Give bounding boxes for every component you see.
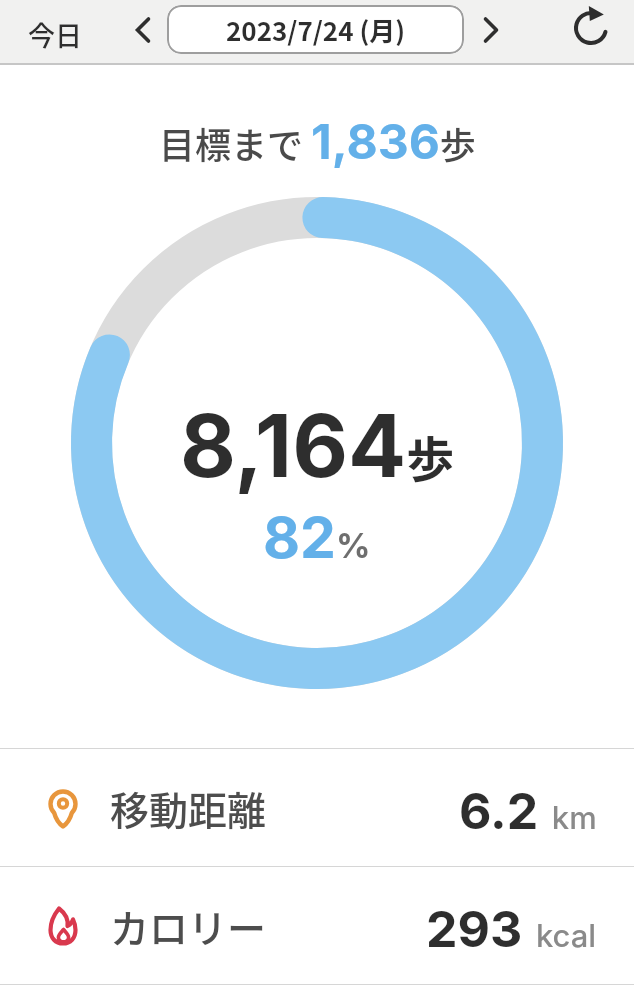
staticText: 目標まで 1,836歩 [159, 112, 476, 170]
staticText: 移動距離 [110, 780, 267, 836]
button[interactable]: 移動距離 [0, 749, 634, 866]
staticText: 6.2 km [459, 781, 597, 841]
button[interactable]: 2023/7/24 (月) [167, 5, 464, 54]
staticText: 293 kcal [426, 899, 597, 959]
staticText: カロリー [110, 898, 267, 954]
button[interactable] [570, 8, 612, 50]
button[interactable]: 今日 [28, 15, 82, 54]
staticText: 2023/7/24 (月) [226, 11, 406, 49]
staticText: 8,164歩 [180, 394, 455, 498]
button[interactable] [126, 13, 154, 45]
button[interactable] [480, 13, 508, 45]
button[interactable]: カロリー [0, 867, 634, 984]
staticText: 82% [263, 503, 371, 572]
